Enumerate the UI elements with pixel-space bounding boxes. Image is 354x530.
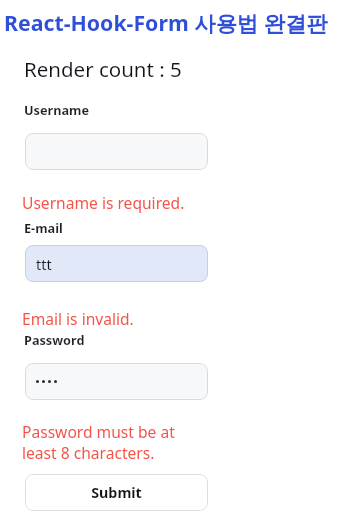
button[interactable]: Submit bbox=[25, 474, 208, 511]
staticText: ttt bbox=[36, 254, 52, 274]
button[interactable] bbox=[25, 363, 208, 400]
button[interactable]: ttt bbox=[25, 245, 208, 282]
staticText: Render count : 5 bbox=[24, 55, 182, 83]
staticText: Email is invalid. bbox=[22, 308, 212, 329]
button[interactable] bbox=[25, 133, 208, 170]
staticText: Username bbox=[24, 101, 89, 118]
staticText: E-mail bbox=[24, 219, 63, 236]
staticText: Submit bbox=[91, 483, 142, 502]
staticText: Password must be at least 8 characters. bbox=[22, 421, 212, 463]
staticText: React-Hook-Form 사용법 완결판 bbox=[4, 8, 354, 37]
staticText: Username is required. bbox=[22, 192, 212, 213]
staticText: Password bbox=[24, 331, 85, 348]
